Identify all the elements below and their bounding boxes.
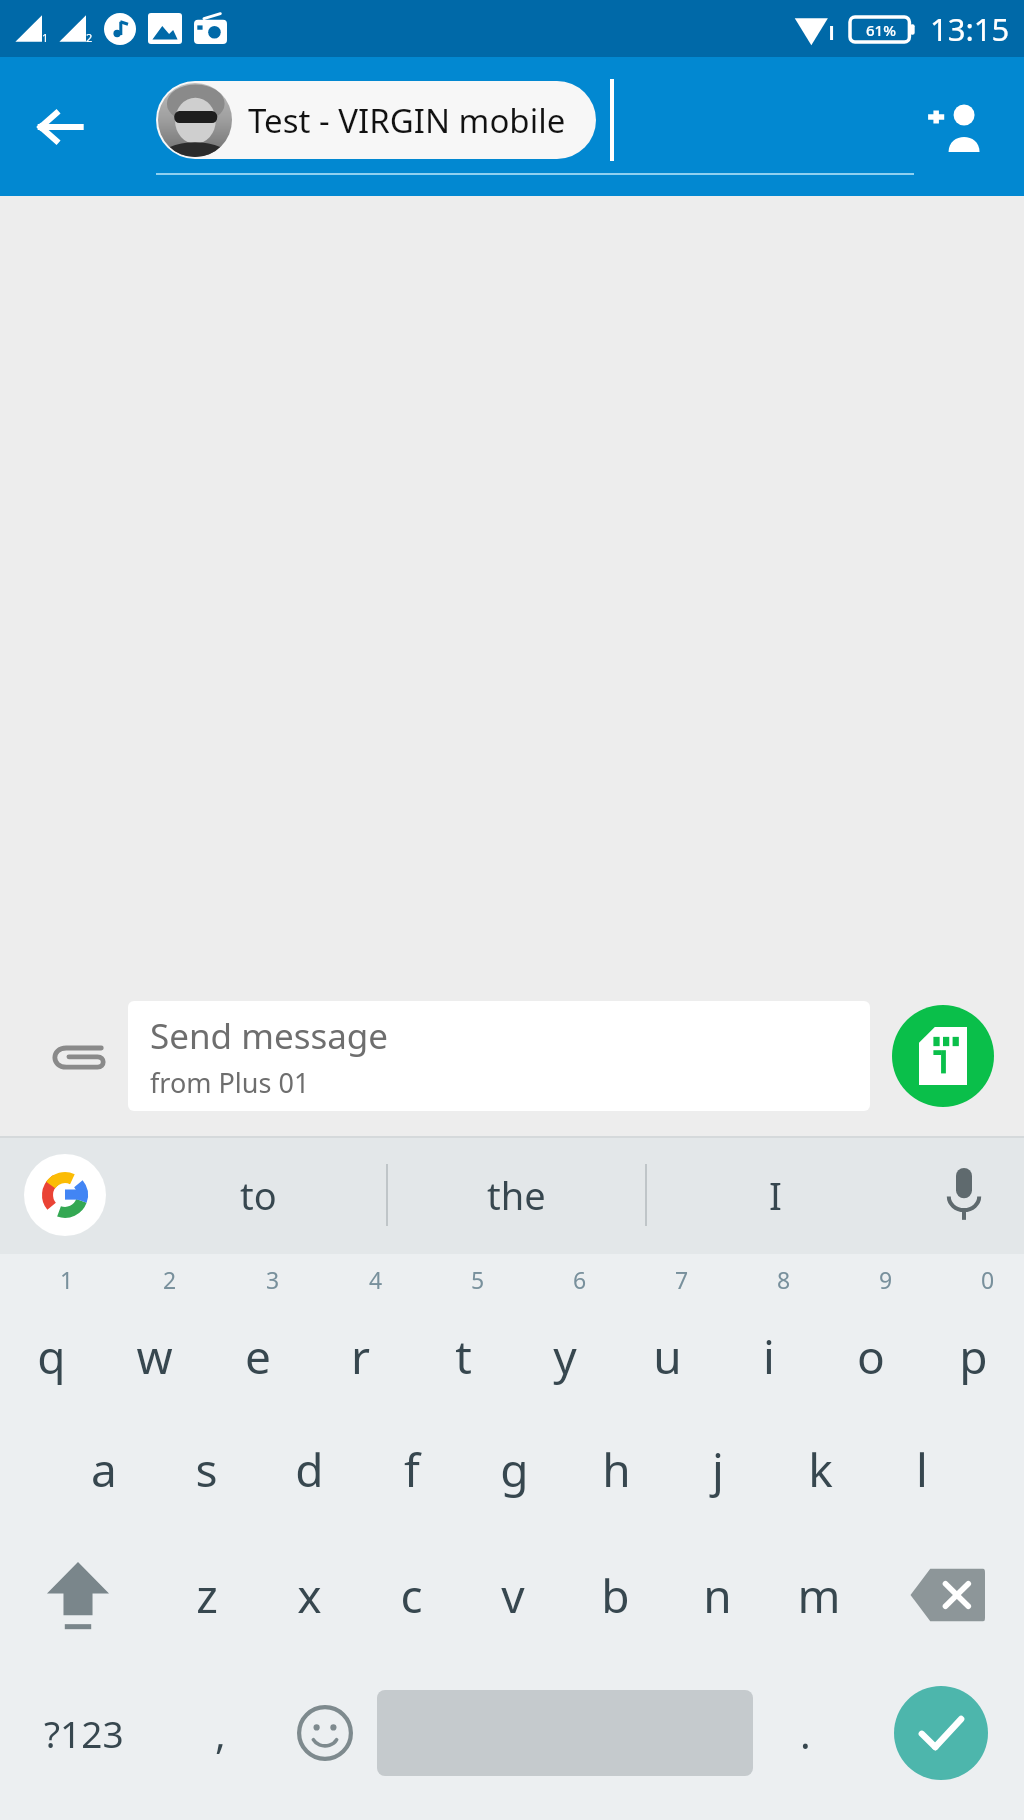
button[interactable]: 5	[412, 1258, 514, 1406]
button[interactable]: l	[871, 1406, 973, 1532]
staticText: o	[857, 1325, 885, 1388]
staticText: y	[553, 1325, 577, 1388]
staticText: z	[196, 1564, 218, 1627]
staticText: u	[653, 1325, 682, 1388]
staticText: 1	[42, 30, 49, 45]
staticText: 7	[675, 1264, 689, 1295]
button[interactable]: n	[666, 1532, 768, 1658]
button[interactable]: Attach	[34, 1013, 120, 1099]
staticText: 4	[369, 1264, 383, 1295]
staticText: l	[916, 1438, 928, 1501]
staticText: the	[487, 1169, 546, 1221]
button[interactable]: j	[667, 1406, 769, 1532]
staticText: a	[91, 1438, 117, 1501]
staticText: b	[601, 1564, 630, 1627]
button[interactable]: to	[130, 1136, 386, 1254]
staticText: k	[808, 1438, 833, 1501]
button[interactable]: Shift	[0, 1532, 155, 1658]
staticText: 61%	[866, 20, 896, 40]
button[interactable]: 7	[616, 1258, 718, 1406]
button[interactable]: k	[769, 1406, 871, 1532]
staticText: 2	[163, 1264, 177, 1295]
staticText: 13:15	[930, 8, 1010, 50]
staticText: 9	[879, 1264, 893, 1295]
button[interactable]: x	[258, 1532, 360, 1658]
staticText: 6	[573, 1264, 587, 1295]
staticText: n	[703, 1564, 732, 1627]
staticText: Send message	[150, 1012, 389, 1060]
button[interactable]: Google	[0, 1136, 130, 1254]
staticText: 5	[471, 1264, 485, 1295]
button[interactable]: Test - VIRGIN mobile	[156, 81, 596, 159]
staticText: s	[195, 1438, 218, 1501]
button[interactable]: m	[768, 1532, 870, 1658]
button[interactable]: 1	[0, 1258, 103, 1406]
button[interactable]: Add recipient	[914, 85, 998, 169]
staticText: e	[245, 1325, 271, 1388]
staticText: I	[769, 1169, 782, 1221]
button[interactable]: ?123	[0, 1658, 168, 1808]
staticText: ?123	[44, 1708, 124, 1758]
staticText: j	[712, 1438, 724, 1501]
staticText: to	[240, 1169, 277, 1221]
button[interactable]: 6	[514, 1258, 616, 1406]
staticText: t	[455, 1325, 472, 1388]
button[interactable]: v	[462, 1532, 564, 1658]
staticText: 8	[777, 1264, 791, 1295]
staticText: h	[602, 1438, 631, 1501]
button[interactable]: 4	[309, 1258, 412, 1406]
staticText: ,	[215, 1706, 226, 1760]
staticText: 1	[60, 1264, 74, 1295]
button[interactable]: z	[155, 1532, 258, 1658]
button[interactable]: 0	[922, 1258, 1024, 1406]
button[interactable]: 2	[103, 1258, 206, 1406]
button[interactable]: Back	[20, 87, 100, 167]
staticText: r	[351, 1325, 370, 1388]
staticText: x	[297, 1564, 322, 1627]
staticText: Test - VIRGIN mobile	[248, 98, 566, 143]
button[interactable]: .	[753, 1658, 857, 1808]
button[interactable]: c	[360, 1532, 462, 1658]
button[interactable]: g	[463, 1406, 565, 1532]
staticText: 2	[86, 30, 93, 45]
button[interactable]: 3	[206, 1258, 309, 1406]
staticText: c	[400, 1564, 423, 1627]
staticText: q	[37, 1325, 66, 1388]
button[interactable]: Backspace	[870, 1532, 1024, 1658]
staticText: d	[295, 1438, 324, 1501]
staticText: m	[797, 1564, 841, 1627]
staticText: f	[404, 1438, 420, 1501]
button[interactable]: Voice input	[904, 1136, 1024, 1254]
staticText: i	[763, 1325, 775, 1388]
staticText: from Plus 01	[150, 1064, 310, 1101]
button[interactable]: h	[565, 1406, 667, 1532]
button[interactable]: 9	[820, 1258, 922, 1406]
button[interactable]: a	[52, 1406, 155, 1532]
button[interactable]: Emoji	[273, 1658, 377, 1808]
staticText: w	[136, 1325, 173, 1388]
button[interactable]: b	[564, 1532, 666, 1658]
button[interactable]: f	[361, 1406, 463, 1532]
button[interactable]: the	[388, 1136, 645, 1254]
button[interactable]: 8	[718, 1258, 820, 1406]
button[interactable]: Send	[892, 1005, 994, 1107]
staticText: 0	[981, 1264, 995, 1295]
staticText: g	[500, 1438, 529, 1501]
button[interactable]: I	[647, 1136, 904, 1254]
button[interactable]: Enter	[894, 1686, 988, 1780]
staticText: p	[959, 1325, 988, 1388]
staticText: .	[800, 1706, 811, 1760]
button[interactable]: d	[258, 1406, 361, 1532]
button[interactable]: Send message	[128, 1001, 870, 1111]
staticText: v	[501, 1564, 525, 1627]
staticText: 3	[266, 1264, 280, 1295]
button[interactable]: s	[155, 1406, 258, 1532]
button[interactable]: ,	[168, 1658, 273, 1808]
